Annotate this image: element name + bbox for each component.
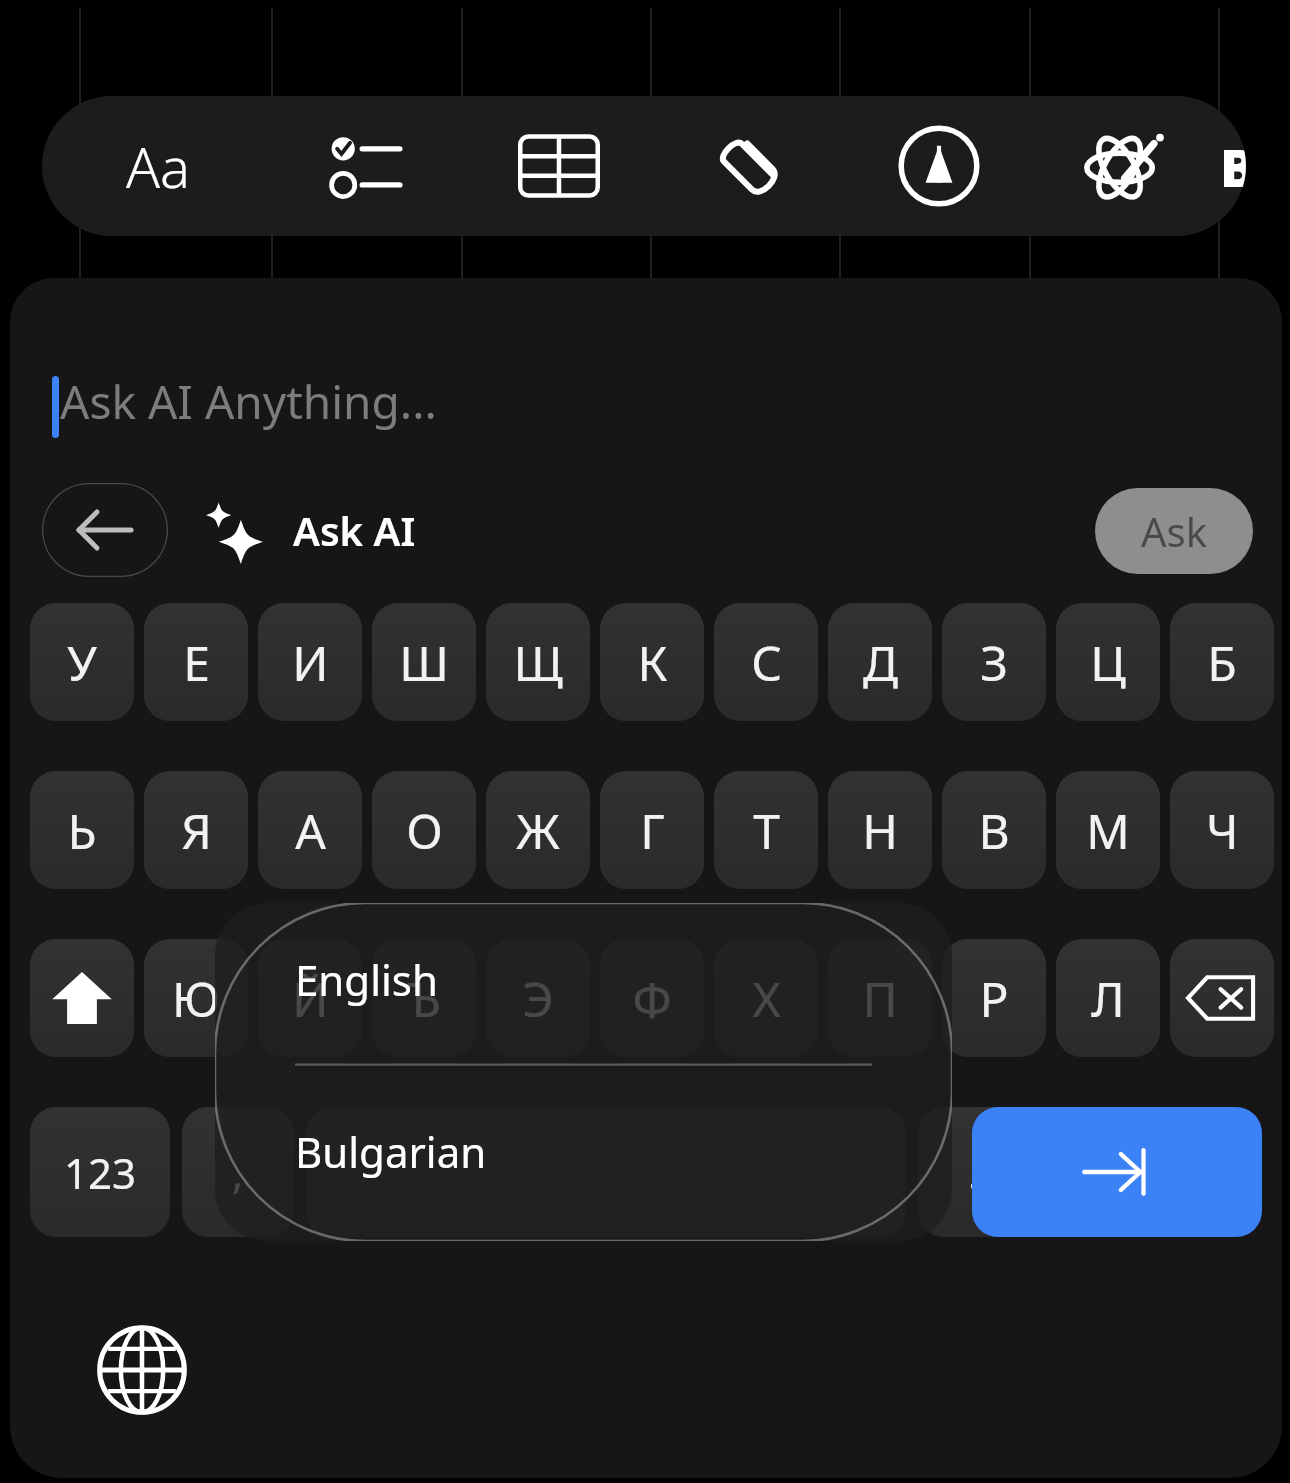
staticText: Ч: [1206, 798, 1239, 863]
button[interactable]: Р: [942, 939, 1046, 1057]
button[interactable]: Back: [42, 483, 168, 577]
staticText: Ц: [1090, 630, 1126, 695]
staticText: Ask AI Anything...: [60, 370, 437, 433]
staticText: М: [1086, 798, 1130, 863]
staticText: Д: [863, 630, 898, 695]
button[interactable]: Э: [486, 939, 590, 1057]
button[interactable]: Ask: [1095, 488, 1253, 574]
button[interactable]: Change language: [82, 1310, 202, 1430]
staticText: Т: [753, 798, 780, 863]
staticText: Ask AI: [293, 503, 416, 557]
button[interactable]: С: [714, 603, 818, 721]
button[interactable]: Е: [144, 603, 248, 721]
staticText: К: [637, 630, 668, 695]
staticText: Х: [752, 966, 781, 1031]
button[interactable]: М: [1056, 771, 1160, 889]
staticText: Ю: [172, 966, 220, 1031]
button[interactable]: У: [30, 603, 134, 721]
staticText: Ъ: [408, 966, 441, 1031]
staticText: Э: [522, 966, 554, 1031]
button[interactable]: Т: [714, 771, 818, 889]
button[interactable]: Й: [258, 939, 362, 1057]
staticText: Ж: [516, 798, 560, 863]
staticText: П: [862, 966, 898, 1031]
staticText: Ь: [67, 798, 97, 863]
staticText: Ф: [632, 966, 672, 1031]
button[interactable]: Markup: [844, 96, 1034, 236]
staticText: Ш: [399, 630, 449, 695]
button[interactable]: Б: [1170, 603, 1274, 721]
button[interactable]: Space: [306, 1107, 906, 1237]
button[interactable]: Ю: [144, 939, 248, 1057]
staticText: Й: [292, 966, 329, 1031]
button[interactable]: Attach: [654, 96, 844, 236]
button[interactable]: Ask AI Anything...: [42, 368, 1142, 448]
button[interactable]: Ц: [1056, 603, 1160, 721]
button[interactable]: English: [295, 951, 438, 1008]
button[interactable]: Text format: [42, 96, 274, 236]
staticText: У: [67, 630, 97, 695]
button[interactable]: Г: [600, 771, 704, 889]
staticText: Aa: [126, 128, 191, 204]
staticText: А: [295, 798, 326, 863]
staticText: З: [980, 630, 1008, 695]
staticText: О: [406, 798, 443, 863]
button[interactable]: Ъ: [372, 939, 476, 1057]
button[interactable]: Bulgarian: [295, 1123, 487, 1180]
button[interactable]: Enter: [972, 1107, 1262, 1237]
button[interactable]: Bold: [1212, 96, 1246, 236]
staticText: Г: [640, 798, 665, 863]
button[interactable]: Backspace: [1170, 939, 1274, 1057]
staticText: С: [751, 630, 782, 695]
button[interactable]: О: [372, 771, 476, 889]
staticText: Н: [862, 798, 898, 863]
staticText: Л: [1091, 966, 1125, 1031]
button[interactable]: Ш: [372, 603, 476, 721]
button[interactable]: З: [942, 603, 1046, 721]
button[interactable]: Ask AI: [195, 483, 416, 577]
button[interactable]: 123: [30, 1107, 170, 1237]
staticText: Е: [183, 630, 210, 695]
button[interactable]: В: [942, 771, 1046, 889]
staticText: Щ: [513, 630, 563, 695]
staticText: Я: [181, 798, 212, 863]
staticText: .: [968, 1144, 980, 1201]
button[interactable]: Ф: [600, 939, 704, 1057]
button[interactable]: ,: [182, 1107, 294, 1237]
button[interactable]: П: [828, 939, 932, 1057]
button[interactable]: English: [215, 903, 952, 1241]
staticText: Ask: [1141, 504, 1208, 558]
staticText: И: [292, 630, 329, 695]
button[interactable]: Л: [1056, 939, 1160, 1057]
staticText: Р: [979, 966, 1009, 1031]
button[interactable]: Ч: [1170, 771, 1274, 889]
button[interactable]: Щ: [486, 603, 590, 721]
button[interactable]: И: [258, 603, 362, 721]
button[interactable]: Я: [144, 771, 248, 889]
button[interactable]: Н: [828, 771, 932, 889]
button[interactable]: .: [918, 1107, 1030, 1237]
staticText: В: [978, 798, 1010, 863]
button[interactable]: Ж: [486, 771, 590, 889]
button[interactable]: AI: [1034, 96, 1212, 236]
button[interactable]: Checklist: [274, 96, 464, 236]
button[interactable]: Table: [464, 96, 654, 236]
button[interactable]: Д: [828, 603, 932, 721]
button[interactable]: Х: [714, 939, 818, 1057]
button[interactable]: Ь: [30, 771, 134, 889]
button[interactable]: Shift: [30, 939, 134, 1057]
staticText: ,: [232, 1144, 244, 1201]
button[interactable]: А: [258, 771, 362, 889]
staticText: B: [1220, 131, 1246, 202]
button[interactable]: К: [600, 603, 704, 721]
staticText: Б: [1207, 630, 1237, 695]
staticText: 123: [64, 1144, 137, 1201]
